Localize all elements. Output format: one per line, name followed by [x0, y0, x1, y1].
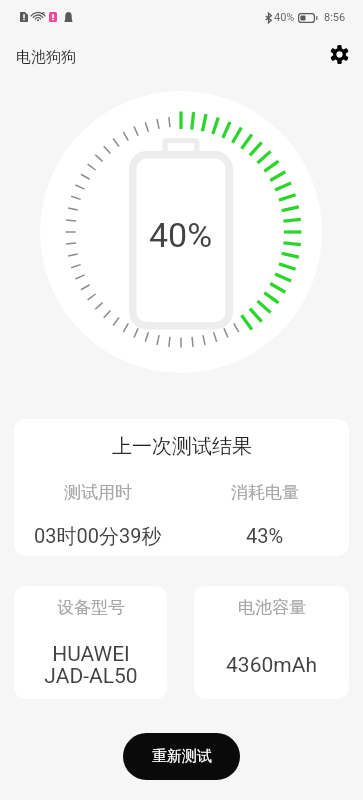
staticText: 测试用时 — [64, 482, 132, 503]
button[interactable]: 重新测试 — [123, 733, 240, 780]
staticText: 重新测试 — [152, 747, 212, 766]
staticText: 电池狗狗 — [16, 48, 76, 67]
staticText: 40% — [149, 215, 213, 255]
staticText: 消耗电量 — [231, 482, 299, 503]
staticText: 电池容量 — [238, 597, 306, 618]
staticText: 43% — [246, 524, 284, 547]
button[interactable]: 设备型号 — [14, 586, 167, 699]
staticText: HUAWEI JAD-AL50 — [44, 642, 138, 689]
button[interactable]: 电池容量 — [194, 586, 349, 699]
staticText: 设备型号 — [57, 597, 125, 618]
staticText: 4360mAh — [226, 653, 317, 678]
staticText: 上一次测试结果 — [112, 434, 252, 459]
staticText: 40% — [274, 11, 295, 24]
button[interactable]: 上一次测试结果 — [14, 419, 349, 556]
staticText: 8:56 — [324, 11, 346, 24]
staticText: 03时00分39秒 — [34, 524, 162, 549]
button[interactable]: Settings — [322, 37, 356, 71]
